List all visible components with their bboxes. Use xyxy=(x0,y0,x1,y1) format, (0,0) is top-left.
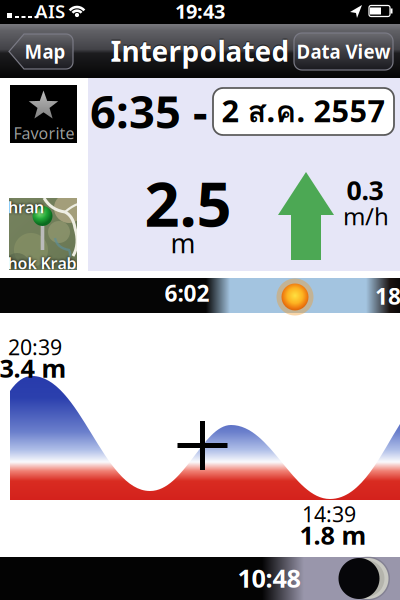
staticText: m/h xyxy=(343,200,389,232)
staticText: Interpolated xyxy=(110,32,289,70)
staticText: 3.4 m xyxy=(0,351,66,385)
button[interactable]: 2 ส.ค. 2557 xyxy=(213,88,394,135)
staticText: Map xyxy=(24,39,65,64)
staticText: 2 ส.ค. 2557 xyxy=(221,88,385,135)
staticText: 20:39 xyxy=(8,333,62,361)
staticText: hok Krab xyxy=(7,252,76,274)
staticText: m xyxy=(170,225,195,261)
staticText: Favorite xyxy=(13,122,74,144)
staticText: AIS xyxy=(35,0,65,23)
staticText: 0.3 xyxy=(346,172,383,208)
staticText: 2.5 xyxy=(144,162,231,244)
staticText: 19:43 xyxy=(175,0,225,24)
staticText: 14:39 xyxy=(302,500,356,528)
button[interactable]: Data View xyxy=(294,33,393,70)
button[interactable]: Back to Map xyxy=(8,32,74,70)
staticText: 6:02 xyxy=(164,278,209,308)
button[interactable]: Map location xyxy=(9,198,77,270)
staticText: Data View xyxy=(296,39,390,64)
staticText: 18 xyxy=(375,281,400,311)
staticText: 10:48 xyxy=(237,561,300,595)
staticText: 1.8 m xyxy=(299,518,366,552)
staticText: 6:35 - xyxy=(90,81,208,141)
button[interactable]: Favorite xyxy=(10,85,77,143)
staticText: hran xyxy=(8,196,44,218)
